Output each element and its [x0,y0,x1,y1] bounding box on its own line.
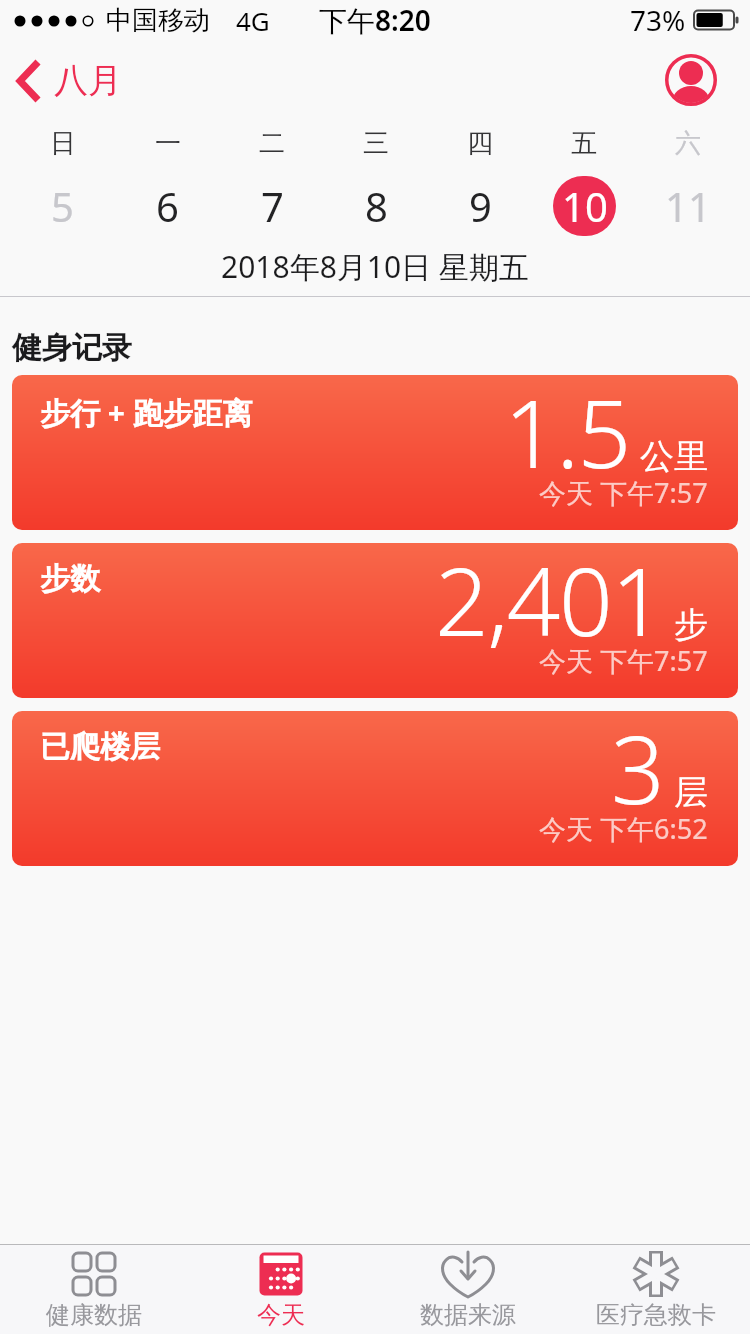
staticText: 健康数据 [46,1300,142,1330]
staticText: 已爬楼层 [40,728,160,766]
staticText: 八月 [54,59,122,102]
staticText: 步数 [40,560,100,598]
staticText: 步 [674,603,708,646]
staticText: 4G [236,3,270,38]
button[interactable]: 7 [220,176,324,236]
staticText: 9 [469,179,492,233]
staticText: 5 [51,179,74,233]
button[interactable]: 8 [324,176,428,236]
button[interactable]: 八月 [16,59,122,102]
staticText: 3 [611,711,664,832]
button[interactable]: 步数 [12,543,738,698]
button[interactable]: 步行 + 跑步距离 [12,375,738,530]
button[interactable]: 今天 [187,1245,374,1334]
staticText: 健身记录 [12,329,132,367]
staticText: 今天 下午7:57 [539,642,708,679]
button[interactable]: 5 [10,176,115,236]
staticText: 73% [630,1,686,39]
staticText: 四 [467,127,493,160]
staticText: 10 [562,179,608,233]
staticText: 二 [259,127,285,160]
button[interactable]: 已爬楼层 [12,711,738,866]
staticText: 1.5 [504,375,630,496]
staticText: 日 [50,127,76,160]
button[interactable]: 医疗急救卡 [562,1245,750,1334]
button[interactable] [663,52,719,108]
button[interactable]: 10 [532,176,636,236]
staticText: 2,401 [435,543,664,664]
staticText: 7 [261,179,284,233]
staticText: 中国移动 [106,4,210,37]
staticText: 11 [665,179,711,233]
button[interactable]: 6 [115,176,220,236]
staticText: 步行 + 跑步距离 [40,392,253,433]
staticText: 五 [571,127,597,160]
staticText: 今天 下午7:57 [539,474,708,511]
staticText: 三 [363,127,389,160]
staticText: 今天 [257,1300,305,1330]
button[interactable]: 健康数据 [0,1245,187,1334]
button[interactable]: 11 [636,176,740,236]
button[interactable]: 数据来源 [374,1245,562,1334]
staticText: 下午8:20 [319,1,431,39]
staticText: 层 [674,771,708,814]
staticText: 公里 [640,435,708,478]
staticText: 六 [675,127,701,160]
staticText: 一 [155,127,181,160]
staticText: 6 [156,179,179,233]
staticText: 数据来源 [420,1300,516,1330]
staticText: 今天 下午6:52 [539,810,708,847]
button[interactable]: 9 [428,176,532,236]
staticText: 8 [365,179,388,233]
staticText: 2018年8月10日 星期五 [221,246,529,287]
staticText: 医疗急救卡 [596,1300,716,1330]
